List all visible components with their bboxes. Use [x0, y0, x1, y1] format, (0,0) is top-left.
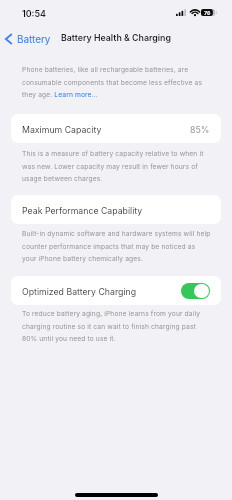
button[interactable]: Battery [2, 31, 54, 47]
button[interactable]: Maximum Capacity [11, 114, 221, 143]
staticText: Battery Health & Charging [61, 32, 171, 43]
staticText: Battery [17, 33, 51, 45]
button[interactable]: Peak Performance Capability [11, 195, 221, 224]
staticText: To reduce battery aging, iPhone learns f… [22, 310, 211, 342]
staticText: 10:54 [22, 8, 46, 19]
staticText: Built-in dynamic software and hardware s… [22, 230, 211, 262]
button[interactable]: Optimized Battery Charging [11, 276, 221, 305]
staticText: Peak Performance Capability [22, 206, 143, 217]
staticText: Phone batteries, like all rechargeable b… [22, 66, 211, 98]
staticText: 76 [204, 10, 211, 17]
staticText: Optimized Battery Charging [22, 287, 137, 298]
staticText: Maximum Capacity [22, 125, 102, 136]
staticText: This is a measure of battery capacity re… [22, 150, 211, 182]
staticText: 85% [190, 125, 210, 136]
button[interactable]: Optimized Battery Charging [181, 283, 210, 299]
